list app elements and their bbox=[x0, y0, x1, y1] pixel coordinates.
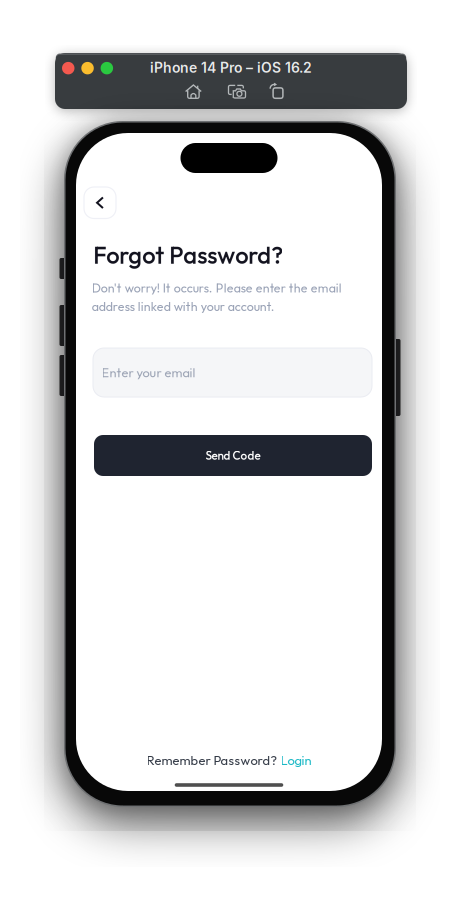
button[interactable]: Screenshot bbox=[221, 81, 253, 103]
button[interactable]: Minimize bbox=[81, 62, 94, 74]
button[interactable]: Login bbox=[280, 752, 311, 768]
button[interactable]: Home bbox=[177, 81, 209, 103]
button[interactable]: Close bbox=[62, 62, 74, 74]
staticText: Remember Password? bbox=[146, 752, 280, 768]
button[interactable]: Send Code bbox=[94, 435, 372, 476]
staticText: Enter your email bbox=[102, 364, 196, 380]
button[interactable]: Zoom bbox=[101, 62, 113, 74]
button[interactable]: Rotate bbox=[260, 79, 292, 101]
button[interactable]: Back bbox=[84, 187, 116, 218]
staticText: Don't worry! It occurs. Please enter the… bbox=[92, 280, 342, 296]
staticText: Send Code bbox=[205, 448, 260, 463]
staticText: iPhone 14 Pro – iOS 16.2 bbox=[150, 59, 312, 76]
staticText: Forgot Password? bbox=[93, 240, 283, 270]
staticText: address linked with your account. bbox=[92, 299, 275, 314]
staticText: Login bbox=[280, 752, 311, 768]
